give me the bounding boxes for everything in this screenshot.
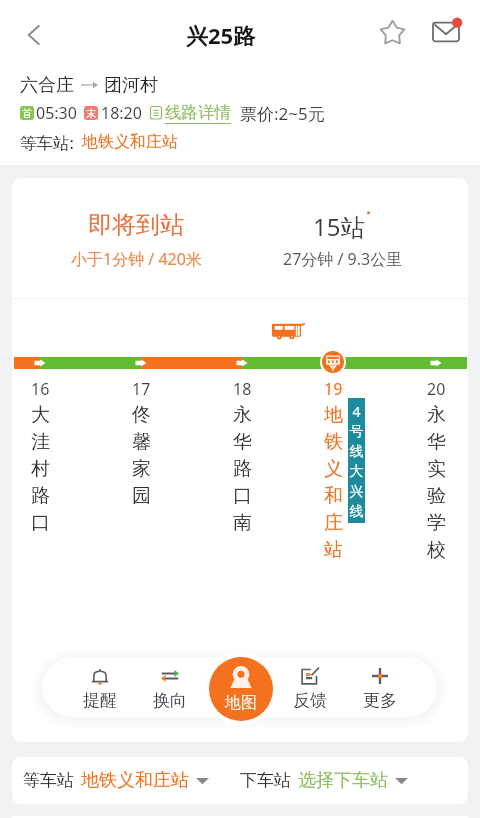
- staticText: 六合庄: [20, 74, 74, 97]
- button[interactable]: Back: [11, 12, 57, 58]
- staticText: 票价:2~5元: [240, 102, 325, 124]
- staticText: 等车站: [23, 770, 74, 791]
- staticText: 15站: [313, 210, 365, 243]
- staticText: 等车站:: [20, 131, 74, 154]
- button[interactable]: 反馈: [280, 657, 340, 717]
- button[interactable]: Messages: [424, 10, 468, 54]
- staticText: 20: [427, 378, 446, 400]
- staticText: 更多: [363, 690, 397, 711]
- staticText: 19: [324, 378, 343, 400]
- staticText: 地铁义和庄站: [82, 132, 178, 152]
- staticText: 末: [86, 107, 96, 120]
- staticText: 地铁义和庄站: [81, 769, 189, 792]
- staticText: 团河村: [104, 74, 158, 97]
- staticText: 16: [31, 378, 50, 400]
- staticText: 换向: [153, 690, 187, 711]
- staticText: 反馈: [293, 690, 327, 711]
- staticText: 佟馨家园: [131, 403, 152, 508]
- staticText: 地图: [225, 693, 257, 713]
- staticText: 永华路口南: [232, 403, 253, 535]
- staticText: 4号线大兴线: [349, 402, 364, 520]
- button[interactable]: 等车站:: [20, 130, 178, 154]
- staticText: 大洼村路口: [30, 403, 51, 535]
- staticText: 选择下车站: [298, 769, 388, 792]
- staticText: 首: [22, 107, 32, 120]
- button[interactable]: 下车站: [240, 769, 408, 792]
- button[interactable]: 线路详情: [149, 102, 231, 124]
- staticText: 兴25路: [186, 20, 256, 50]
- staticText: 地铁义和庄站: [323, 403, 344, 562]
- staticText: 提醒: [83, 690, 117, 711]
- staticText: 下车站: [240, 770, 291, 791]
- button[interactable]: 更多: [350, 657, 410, 717]
- staticText: 18: [233, 378, 252, 400]
- staticText: 05:30: [36, 102, 77, 124]
- staticText: 永华实验学校: [426, 403, 447, 562]
- staticText: 小于1分钟 / 420米: [71, 248, 202, 270]
- button[interactable]: 地图: [209, 657, 273, 721]
- button[interactable]: 提醒: [70, 657, 130, 717]
- staticText: 18:20: [101, 102, 142, 124]
- button[interactable]: 等车站: [23, 769, 209, 792]
- button[interactable]: 换向: [140, 657, 200, 717]
- staticText: 线路详情: [165, 102, 231, 123]
- staticText: 27分钟 / 9.3公里: [283, 248, 403, 270]
- staticText: 17: [132, 378, 151, 400]
- staticText: 即将到站: [88, 210, 184, 240]
- button[interactable]: Favorite: [370, 10, 414, 54]
